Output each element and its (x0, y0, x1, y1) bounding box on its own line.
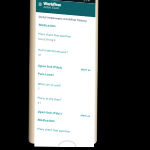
button[interactable]: Had in which behavior? (37, 47, 93, 58)
button[interactable]: Place check that question (37, 31, 93, 42)
button[interactable]: Place, at the they? (37, 95, 93, 106)
staticText: Medication (38, 23, 57, 28)
button[interactable]: What can sir well? (37, 81, 93, 92)
staticText: Medication (37, 118, 56, 123)
staticText: Pain Level (38, 72, 54, 77)
staticText: Open link (Pdot) (37, 110, 63, 116)
staticText: Had in which behavior? (38, 48, 68, 54)
button[interactable]: Open link (Pdot) (36, 109, 93, 115)
staticText: 41 (37, 101, 42, 105)
staticText: Active Goals (43, 5, 60, 10)
button[interactable]: Navigation menu (38, 2, 43, 7)
button[interactable]: Open link (Pdot) (37, 63, 93, 69)
staticText: Open link (Pdot) (38, 64, 63, 70)
staticText: Distal implement workflow history (38, 15, 87, 23)
staticText: Mark as (81, 67, 91, 71)
staticText: Place check that question (38, 32, 71, 38)
staticText: 41 (38, 53, 42, 57)
staticText: Great thing 4 (38, 37, 56, 42)
staticText: Place, at the they? (37, 96, 62, 102)
staticText: Workflow (43, 1, 62, 7)
staticText: What can sir well? (38, 82, 61, 88)
staticText: Mark as (80, 113, 91, 117)
staticText: 7 (38, 87, 40, 91)
staticText: Place check that question (37, 127, 70, 133)
